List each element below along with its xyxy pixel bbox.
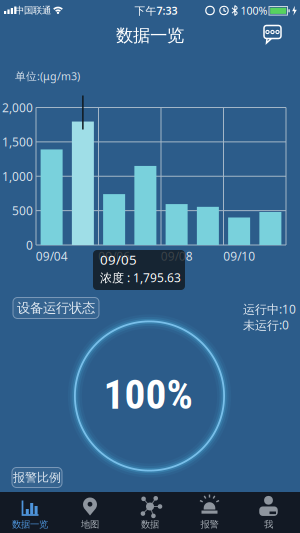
staticText: 报警比例	[13, 470, 61, 485]
staticText: 100%	[103, 370, 192, 419]
staticText: 09/06	[98, 248, 130, 264]
staticText: 1,000	[2, 168, 33, 184]
staticText: 下午7:33	[134, 3, 177, 18]
staticText: 浓度 : 1,795.63	[100, 269, 181, 285]
button[interactable]: 我	[240, 492, 300, 533]
staticText: 500	[12, 203, 33, 219]
button[interactable]: 设备运行状态	[13, 297, 99, 318]
staticText: 09/04	[36, 248, 68, 264]
button[interactable]: 报警比例	[12, 467, 62, 487]
staticText: 0	[26, 237, 33, 253]
button[interactable]: 数据	[120, 492, 180, 533]
staticText: 报警	[200, 519, 218, 530]
staticText: 09/08	[161, 248, 193, 264]
staticText: 数据一览	[12, 519, 48, 530]
staticText: 地图	[81, 519, 99, 530]
staticText: 单位:(μg/m3)	[15, 69, 80, 83]
staticText: 我	[264, 519, 273, 530]
staticText: 运行中:10	[243, 301, 296, 317]
staticText: 1,500	[2, 134, 33, 150]
staticText: 09/10	[223, 248, 255, 264]
button[interactable]: 报警	[180, 492, 240, 533]
staticText: 未运行:0	[243, 317, 289, 333]
staticText: 100%	[240, 3, 267, 18]
staticText: 中国联通	[15, 5, 51, 16]
staticText: 数据一览	[116, 25, 184, 46]
staticText: 2,000	[2, 99, 33, 115]
staticText: 09/05	[100, 251, 137, 268]
button[interactable]: 数据一览	[0, 492, 60, 533]
staticText: 设备运行状态	[17, 300, 95, 316]
button[interactable]: 地图	[60, 492, 120, 533]
staticText: 数据	[141, 519, 159, 530]
button[interactable]: 消息	[254, 20, 290, 50]
